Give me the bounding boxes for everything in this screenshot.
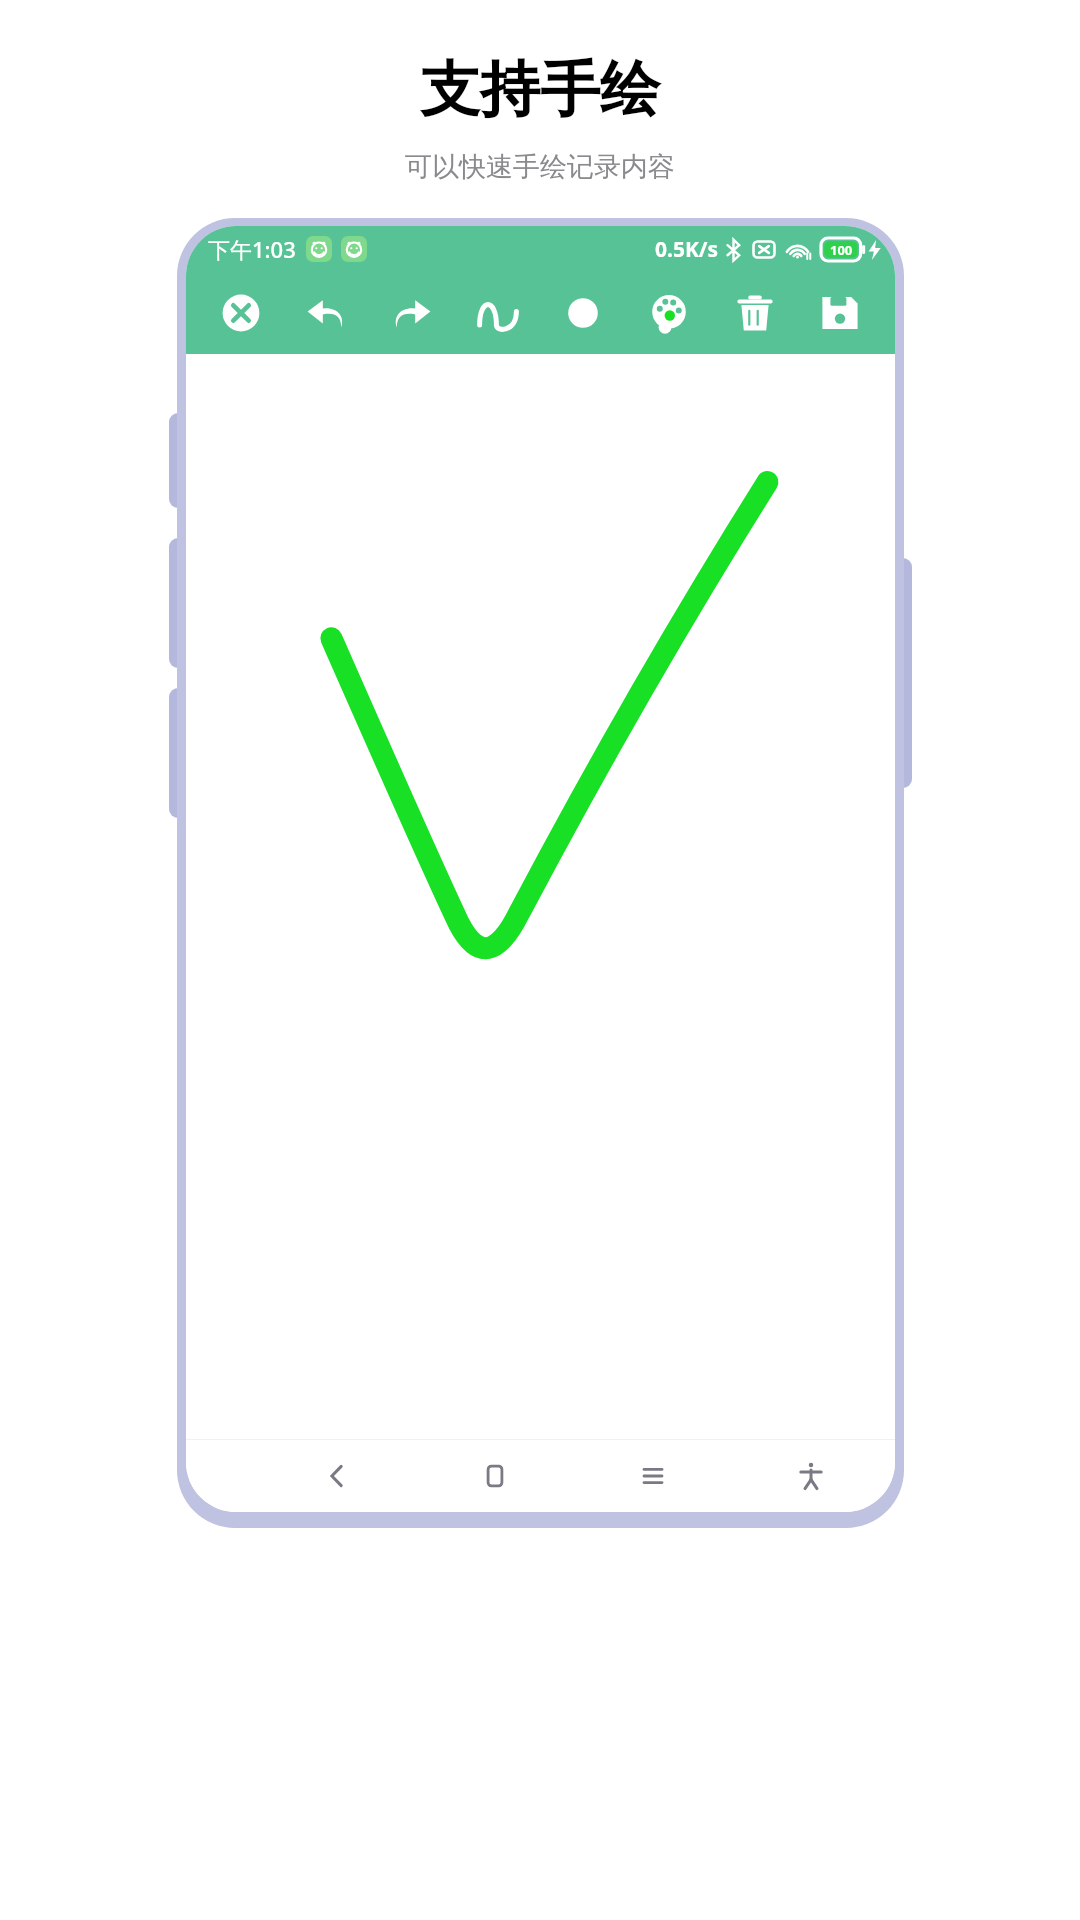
button[interactable]: Back — [307, 1446, 367, 1506]
button[interactable]: Delete — [724, 282, 786, 344]
button[interactable]: Color palette — [638, 282, 700, 344]
button[interactable]: Stroke style — [467, 282, 529, 344]
staticText: 可以快速手绘记录内容 — [405, 150, 675, 184]
staticText: 100 — [830, 241, 853, 259]
button[interactable]: Brush size — [552, 282, 614, 344]
staticText: 0.5K/s — [655, 235, 719, 264]
button[interactable]: Home — [465, 1446, 525, 1506]
button[interactable]: Recents — [623, 1446, 683, 1506]
button[interactable]: Save — [809, 282, 871, 344]
button[interactable]: Close — [210, 282, 272, 344]
button[interactable]: Accessibility — [781, 1446, 841, 1506]
staticText: 支持手绘 — [420, 52, 660, 128]
staticText: 下午1:03 — [208, 234, 296, 264]
button[interactable]: Undo — [295, 282, 357, 344]
button[interactable]: Redo — [381, 282, 443, 344]
